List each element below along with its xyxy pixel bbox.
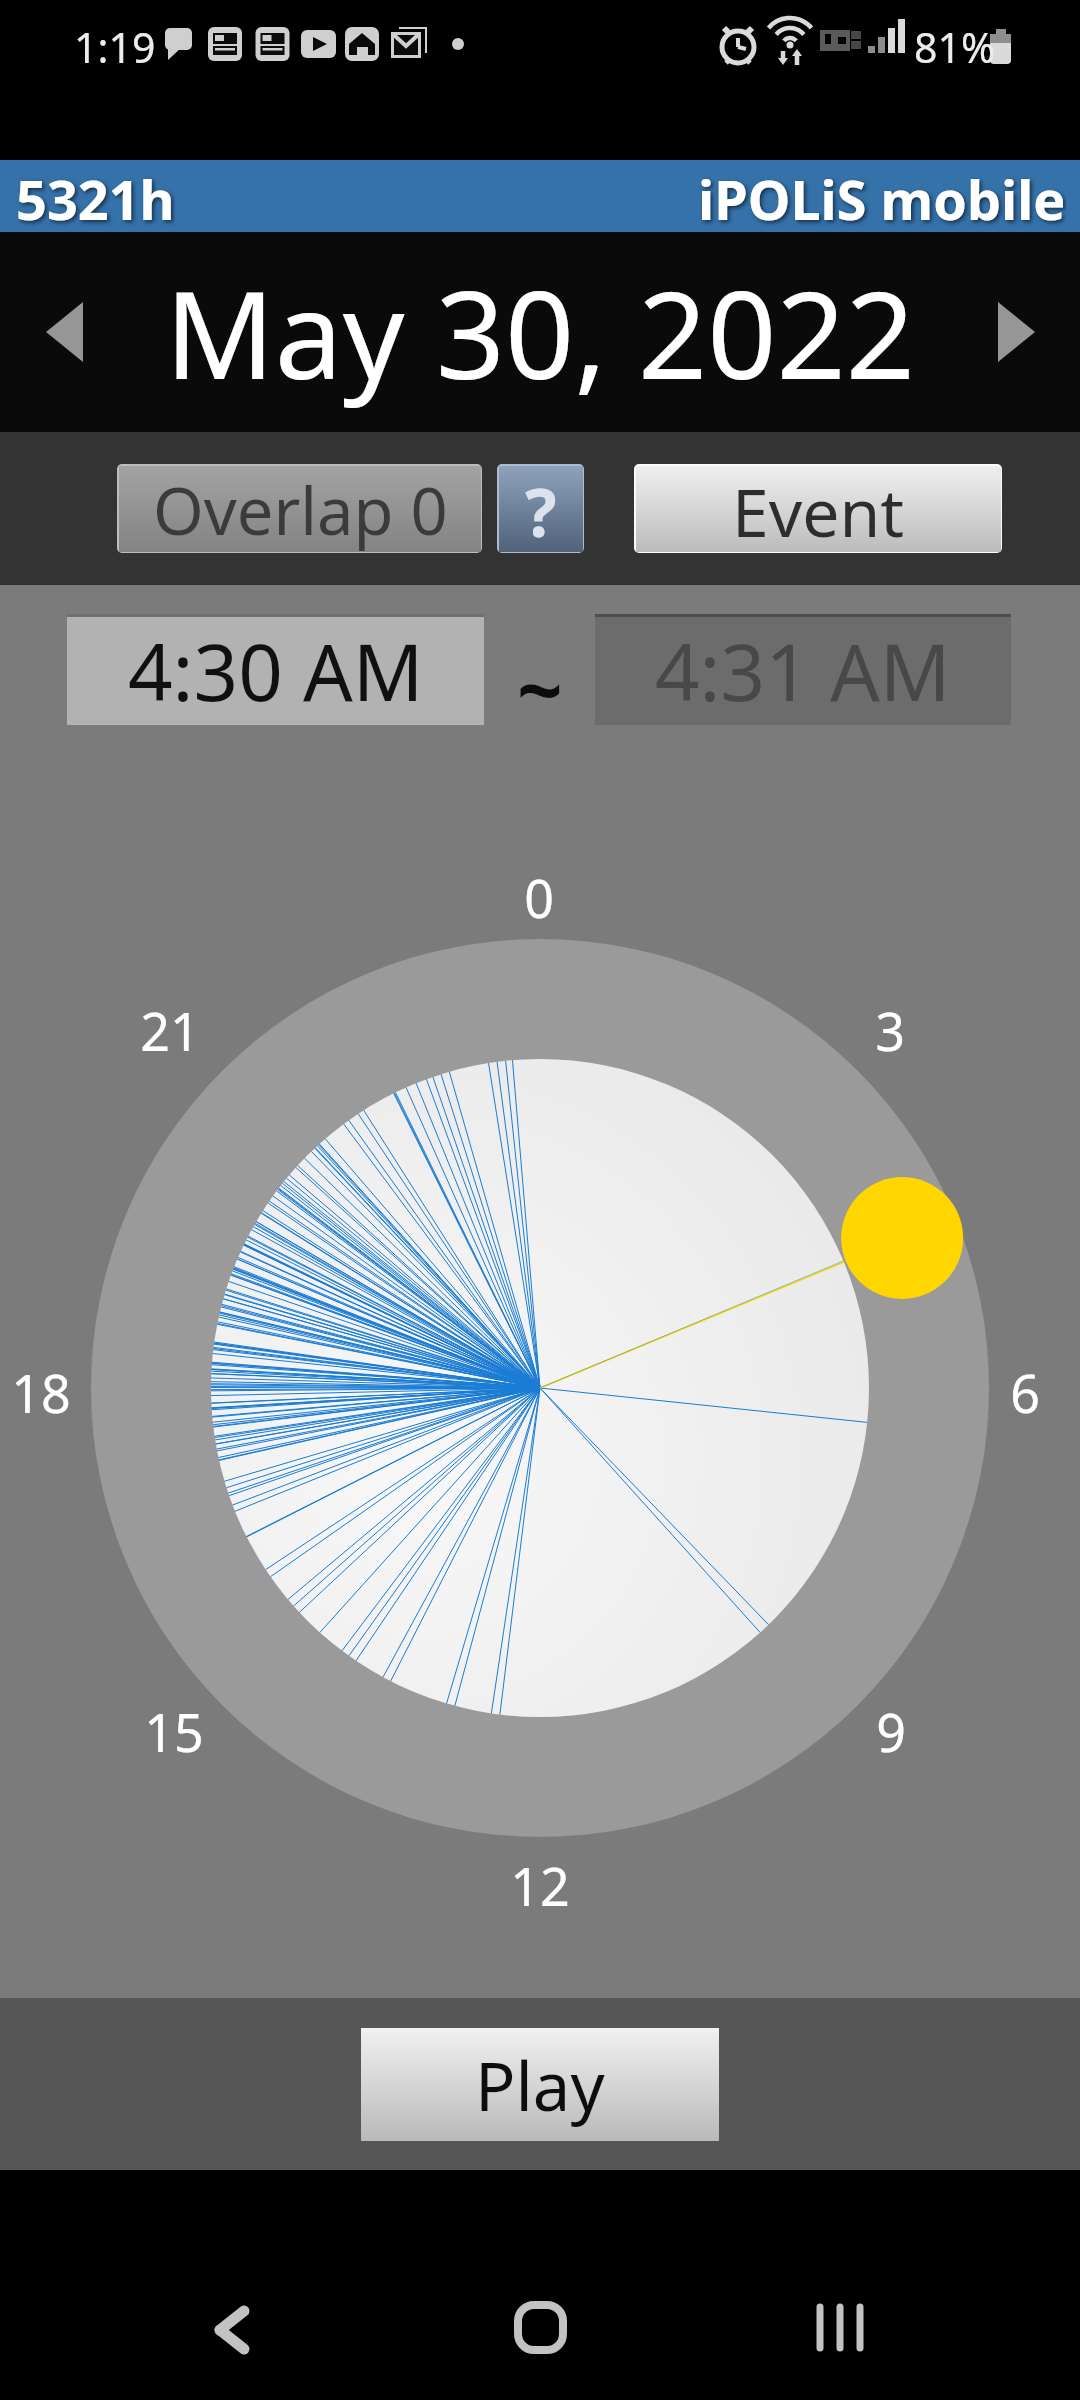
staticText: 12: [510, 1850, 570, 1921]
staticText: 6: [1010, 1357, 1040, 1428]
staticText: 5321h: [16, 162, 175, 232]
button[interactable]: Next day: [952, 232, 1080, 432]
staticText: iPOLiS mobile: [698, 162, 1066, 232]
button[interactable]: 4:31 AM: [595, 614, 1011, 725]
staticText: 1:19: [74, 19, 156, 75]
button[interactable]: Home: [450, 2267, 630, 2387]
button[interactable]: Previous day: [0, 232, 128, 432]
staticText: 4:31 AM: [655, 618, 951, 724]
staticText: Event: [732, 466, 905, 552]
staticText: 9: [876, 1696, 906, 1767]
staticText: Play: [475, 2039, 605, 2130]
staticText: ?: [525, 466, 557, 552]
staticText: 4:30 AM: [128, 618, 424, 724]
button[interactable]: Event: [636, 466, 1001, 552]
staticText: 21: [140, 995, 200, 1066]
staticText: 18: [11, 1357, 71, 1428]
staticText: 0: [524, 862, 554, 933]
staticText: Overlap 0: [153, 466, 448, 552]
button[interactable]: Recents: [749, 2267, 929, 2387]
button[interactable]: Overlap 0: [119, 466, 481, 552]
staticText: 3: [875, 995, 905, 1066]
button[interactable]: Play: [361, 2028, 719, 2141]
button[interactable]: Help: [499, 466, 583, 552]
button[interactable]: Back: [144, 2270, 324, 2390]
button[interactable]: 4:30 AM: [67, 614, 484, 725]
staticText: May 30, 2022: [165, 250, 915, 415]
staticText: 81%: [914, 19, 995, 75]
staticText: ~: [517, 634, 563, 743]
staticText: 15: [144, 1696, 204, 1767]
